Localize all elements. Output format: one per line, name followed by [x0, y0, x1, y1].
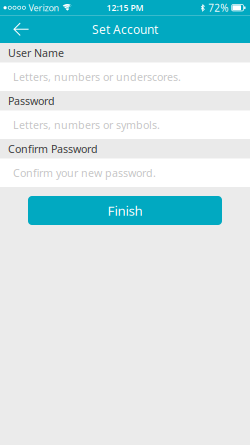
button[interactable]: Back	[0, 15, 40, 43]
staticText: Password	[8, 94, 55, 108]
staticText: Confirm Password	[8, 142, 98, 156]
button[interactable]: Confirm your new password.	[0, 158, 250, 187]
staticText: 72%	[208, 1, 228, 14]
staticText: Finish	[107, 202, 142, 219]
button[interactable]: Finish	[28, 196, 222, 225]
staticText: Letters, numbers or underscores.	[13, 70, 181, 84]
staticText: User Name	[8, 46, 64, 60]
staticText: Confirm your new password.	[13, 166, 156, 180]
staticText: Verizon	[28, 2, 59, 14]
staticText: Letters, numbers or symbols.	[13, 118, 160, 132]
button[interactable]: Letters, numbers or symbols.	[0, 110, 250, 139]
button[interactable]: Letters, numbers or underscores.	[0, 62, 250, 91]
staticText: Set Account	[92, 21, 158, 37]
staticText: 12:15 PM	[106, 2, 143, 14]
